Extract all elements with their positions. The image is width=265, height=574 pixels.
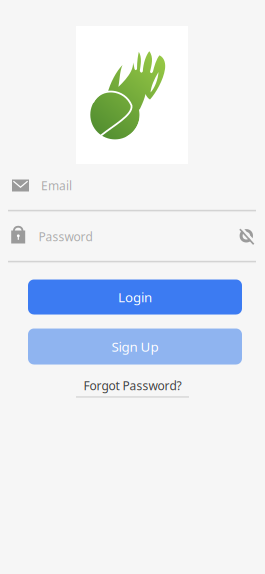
button[interactable]: Forgot Password?: [76, 377, 189, 397]
staticText: Forgot Password?: [83, 377, 181, 393]
staticText: Login: [118, 288, 152, 306]
button[interactable]: Sign Up: [28, 328, 242, 364]
button[interactable]: Show password: [234, 224, 258, 248]
staticText: Email: [41, 177, 72, 193]
button[interactable]: Login: [28, 279, 242, 314]
staticText: Password: [38, 228, 92, 244]
staticText: Sign Up: [111, 338, 158, 355]
